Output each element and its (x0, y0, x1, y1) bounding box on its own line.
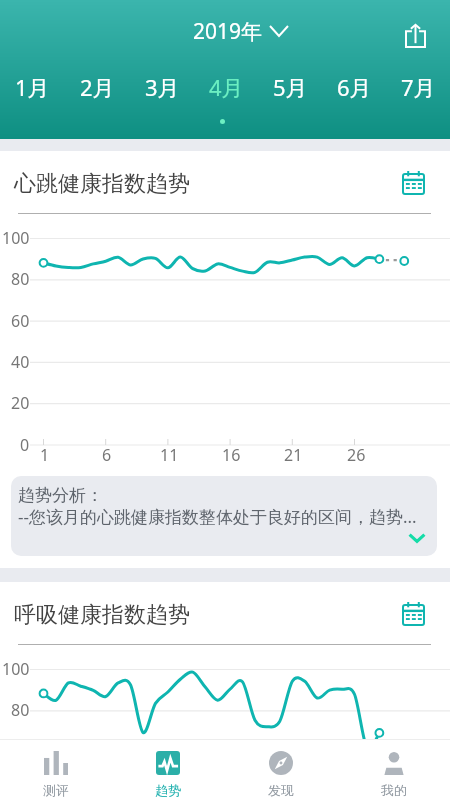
staticText: 20 (11, 392, 30, 414)
staticText: 1 (40, 444, 50, 466)
staticText: 6 (102, 444, 112, 466)
staticText: 80 (11, 699, 30, 721)
button[interactable]: Expand (397, 522, 437, 554)
button[interactable]: 我的 (337, 739, 450, 800)
button[interactable]: 趋势分析： (11, 476, 437, 556)
staticText: 100 (2, 658, 30, 680)
staticText: 趋势分析： (18, 485, 103, 506)
staticText: 100 (2, 227, 30, 249)
button[interactable]: 2月 (65, 66, 130, 108)
button[interactable]: 6月 (322, 66, 386, 108)
staticText: 4月 (209, 72, 244, 102)
button[interactable]: 1月 (0, 66, 65, 108)
staticText: 21 (284, 444, 303, 466)
staticText: 11 (160, 444, 179, 466)
staticText: 趋势 (155, 782, 181, 798)
staticText: --您该月的心跳健康指数整体处于良好的区间，趋势... (18, 505, 417, 528)
staticText: 1月 (15, 72, 50, 102)
staticText: 我的 (381, 782, 407, 798)
staticText: 2月 (80, 72, 115, 102)
staticText: 2019年 (193, 17, 263, 46)
staticText: 0 (20, 434, 30, 456)
staticText: 心跳健康指数趋势 (14, 170, 190, 198)
button[interactable]: Select date (392, 162, 434, 204)
staticText: 3月 (145, 72, 180, 102)
button[interactable]: Select date (392, 593, 434, 635)
staticText: 60 (11, 310, 30, 332)
staticText: 7月 (401, 72, 436, 102)
button[interactable]: 3月 (130, 66, 194, 108)
staticText: 16 (222, 444, 241, 466)
button[interactable]: 发现 (224, 739, 337, 800)
button[interactable]: 测评 (0, 739, 112, 800)
button[interactable]: 2019年 (185, 10, 297, 52)
button[interactable]: 4月 (194, 66, 258, 108)
staticText: 80 (11, 268, 30, 290)
staticText: 40 (11, 351, 30, 373)
staticText: 发现 (268, 782, 294, 798)
staticText: 测评 (43, 782, 69, 798)
staticText: 呼吸健康指数趋势 (14, 601, 190, 629)
button[interactable]: 趋势 (112, 739, 224, 800)
staticText: 5月 (273, 72, 308, 102)
staticText: 26 (347, 444, 366, 466)
button[interactable]: 7月 (386, 66, 450, 108)
button[interactable]: 5月 (258, 66, 322, 108)
staticText: 6月 (337, 72, 372, 102)
button[interactable]: Share (393, 14, 437, 58)
